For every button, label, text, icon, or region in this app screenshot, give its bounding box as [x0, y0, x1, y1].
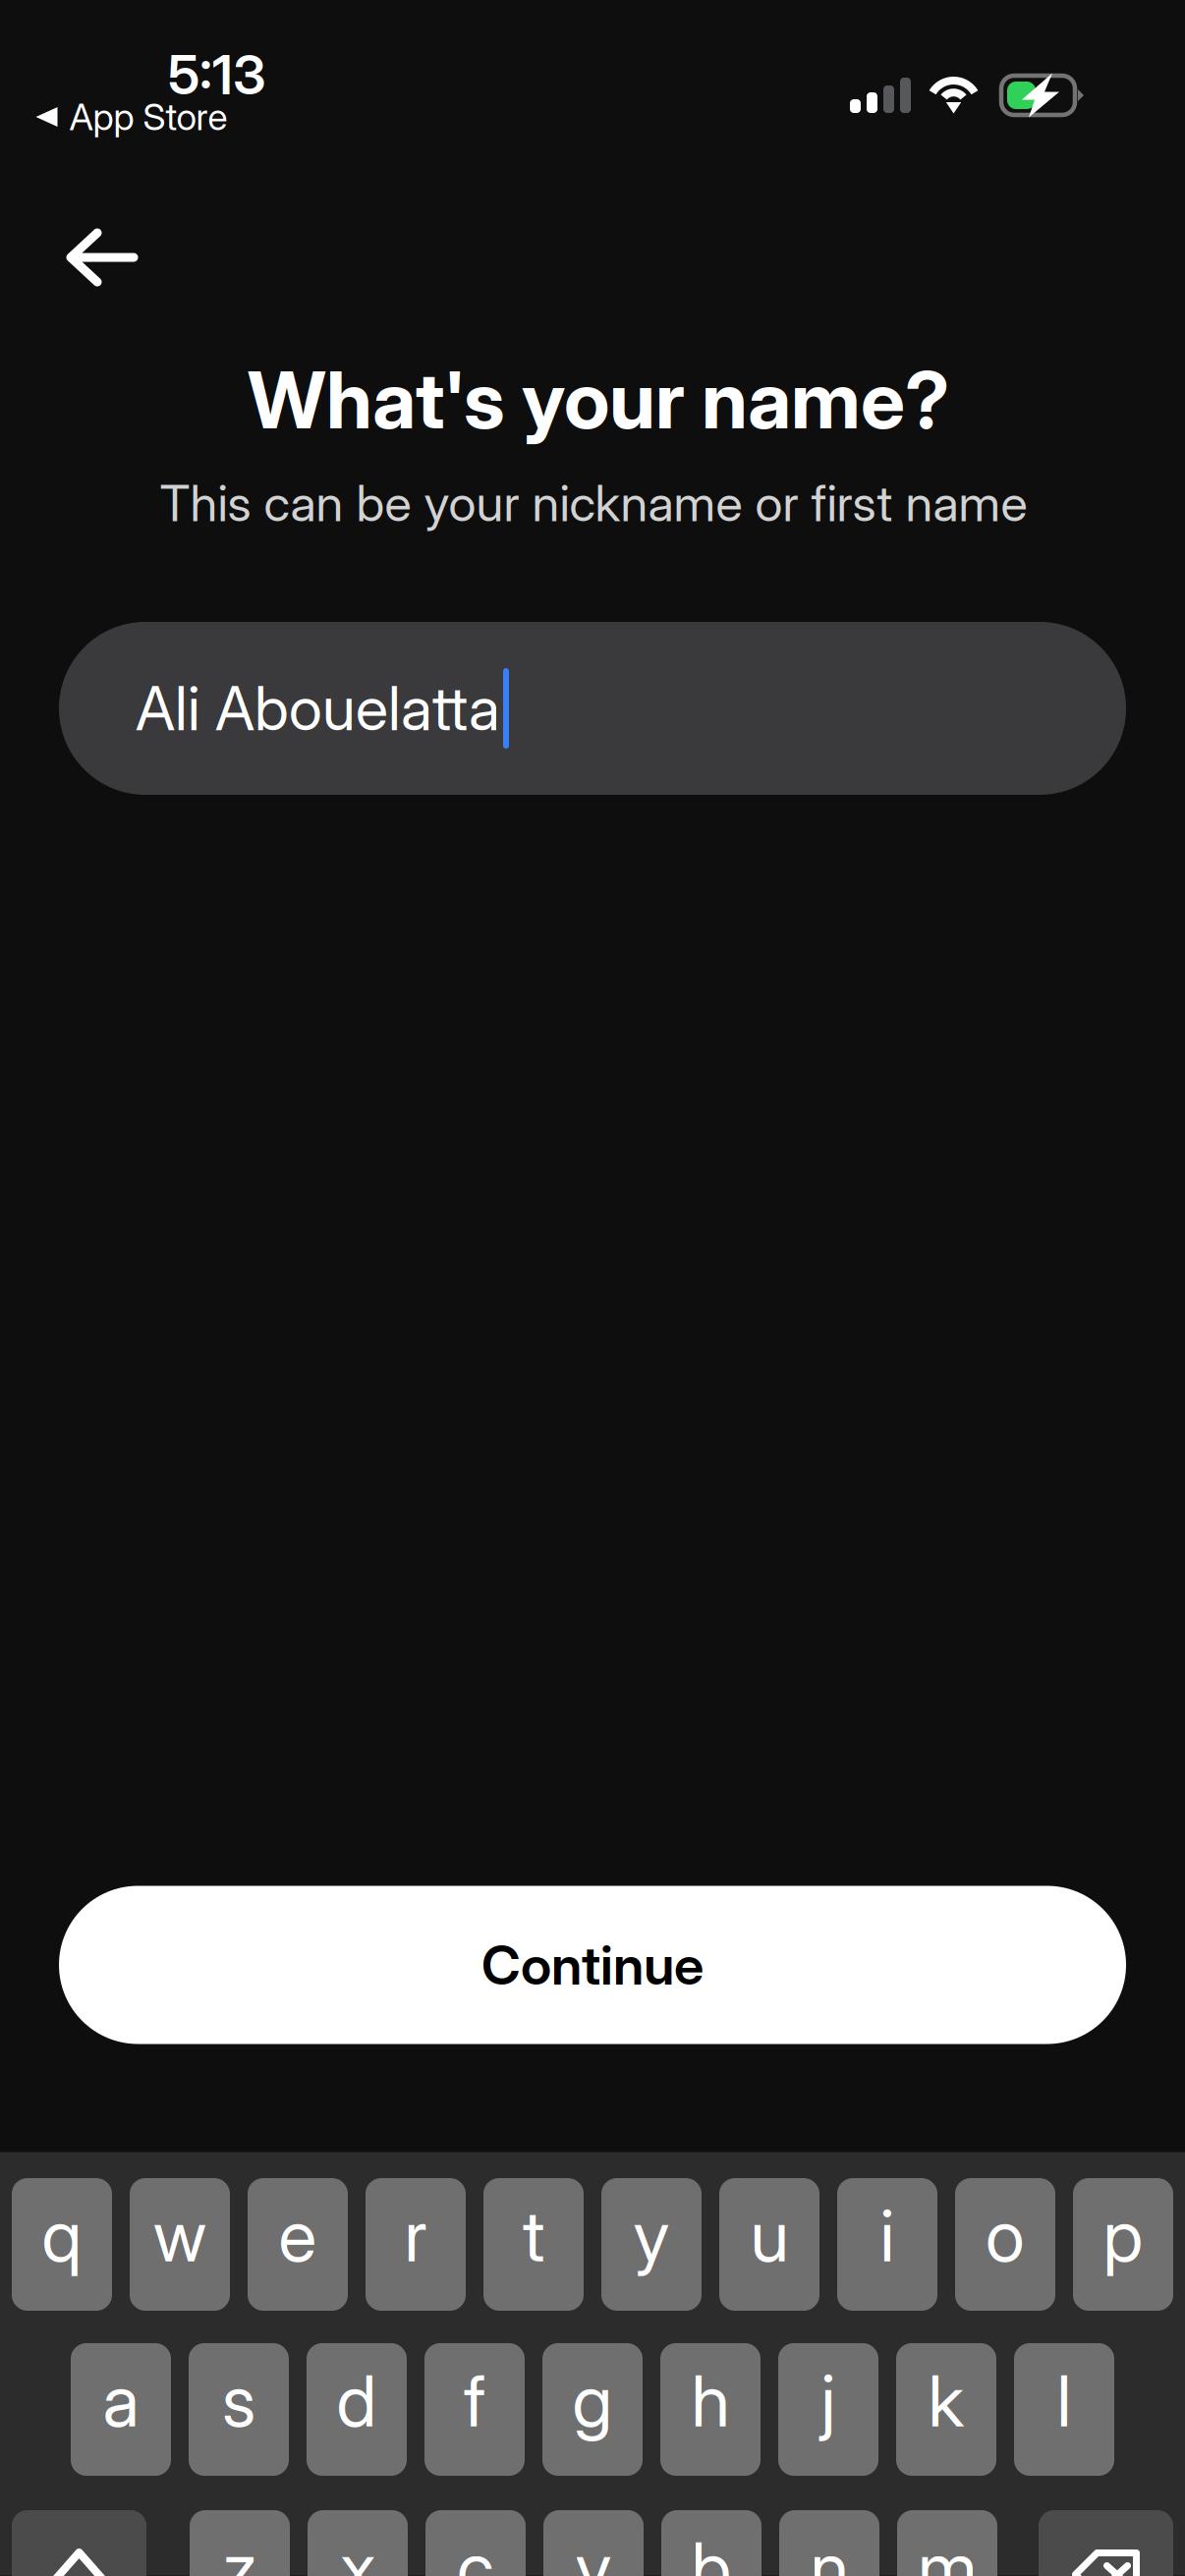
button[interactable]: Continue	[59, 1886, 1126, 2044]
staticText: f	[464, 2358, 485, 2443]
staticText: s	[222, 2358, 255, 2443]
staticText: u	[750, 2193, 789, 2278]
button[interactable]: u	[719, 2178, 819, 2311]
staticText: g	[572, 2358, 613, 2443]
button[interactable]: f	[424, 2343, 525, 2476]
button[interactable]: y	[601, 2178, 702, 2311]
staticText: h	[691, 2358, 730, 2443]
button[interactable]: s	[189, 2343, 289, 2476]
button[interactable]: r	[366, 2178, 466, 2311]
staticText: j	[821, 2358, 836, 2443]
button[interactable]: z	[190, 2510, 290, 2576]
button[interactable]: Back	[37, 200, 167, 314]
staticText: a	[103, 2358, 139, 2443]
button[interactable]: b	[661, 2510, 762, 2576]
staticText: d	[337, 2358, 377, 2443]
button[interactable]: v	[543, 2510, 644, 2576]
staticText: k	[928, 2358, 964, 2443]
staticText: q	[42, 2193, 82, 2278]
staticText: e	[279, 2193, 317, 2278]
button[interactable]: q	[12, 2178, 112, 2311]
staticText: r	[404, 2193, 427, 2278]
button[interactable]: j	[778, 2343, 878, 2476]
staticText: 5:13	[168, 42, 266, 107]
staticText: Ali Abouelatta	[136, 672, 500, 745]
staticText: This can be your nickname or first name	[160, 473, 1027, 533]
button[interactable]: h	[660, 2343, 761, 2476]
button[interactable]: x	[308, 2510, 408, 2576]
staticText: b	[691, 2525, 732, 2576]
button[interactable]: m	[897, 2510, 997, 2576]
button[interactable]: Delete	[1039, 2510, 1173, 2576]
staticText: Continue	[481, 1932, 704, 1997]
staticText: z	[223, 2525, 256, 2576]
staticText: m	[918, 2525, 977, 2576]
staticText: n	[810, 2525, 848, 2576]
button[interactable]: k	[896, 2343, 996, 2476]
staticText: l	[1057, 2358, 1072, 2443]
button[interactable]: a	[71, 2343, 171, 2476]
button[interactable]: i	[837, 2178, 937, 2311]
staticText: p	[1103, 2193, 1143, 2278]
button[interactable]: o	[955, 2178, 1055, 2311]
button[interactable]: c	[425, 2510, 526, 2576]
staticText: w	[153, 2193, 206, 2278]
button[interactable]: Ali Abouelatta	[59, 622, 1126, 795]
staticText: x	[340, 2525, 375, 2576]
staticText: t	[523, 2193, 544, 2278]
staticText: i	[880, 2193, 895, 2278]
staticText: y	[633, 2193, 670, 2278]
staticText: o	[986, 2193, 1025, 2278]
button[interactable]: w	[130, 2178, 230, 2311]
button[interactable]: t	[483, 2178, 584, 2311]
button[interactable]: g	[542, 2343, 643, 2476]
button[interactable]: d	[307, 2343, 407, 2476]
staticText: What's your name?	[248, 352, 949, 447]
button[interactable]: e	[248, 2178, 348, 2311]
staticText: App Store	[69, 95, 227, 139]
staticText: v	[575, 2525, 612, 2576]
button[interactable]: Shift	[12, 2510, 146, 2576]
button[interactable]: p	[1073, 2178, 1173, 2311]
button[interactable]: l	[1014, 2343, 1114, 2476]
staticText: c	[457, 2525, 494, 2576]
button[interactable]: n	[779, 2510, 879, 2576]
